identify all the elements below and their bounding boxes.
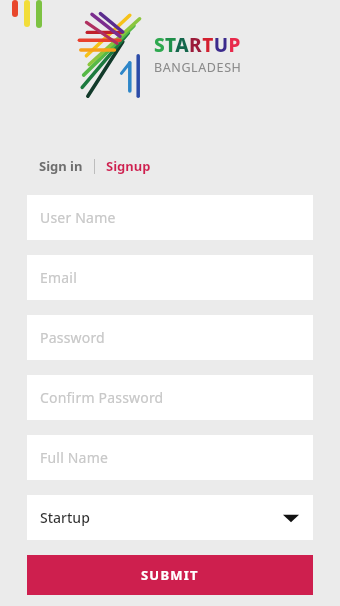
button[interactable]: Sign in [38,155,84,177]
button[interactable]: Confirm Password [27,375,313,420]
button[interactable]: Startup [27,495,313,540]
other: Open dropdown [283,513,299,523]
button[interactable]: SUBMIT [27,555,313,595]
staticText: Sign in [39,157,83,175]
button[interactable]: Email [27,255,313,300]
staticText: Signup [106,157,151,175]
staticText: Password [40,328,105,347]
staticText: Confirm Password [40,388,164,407]
staticText: Email [40,268,77,287]
staticText: Full Name [40,448,109,467]
staticText: BANGLADESH [154,59,242,76]
staticText: Startup [40,508,90,527]
staticText: STARTUP [154,32,241,58]
button[interactable]: User Name [27,195,313,240]
staticText: User Name [40,208,116,227]
button[interactable]: Password [27,315,313,360]
staticText: SUBMIT [141,566,199,584]
button[interactable]: Full Name [27,435,313,480]
button[interactable]: Signup [105,155,152,177]
other: Startup Bangladesh logo [78,10,148,98]
